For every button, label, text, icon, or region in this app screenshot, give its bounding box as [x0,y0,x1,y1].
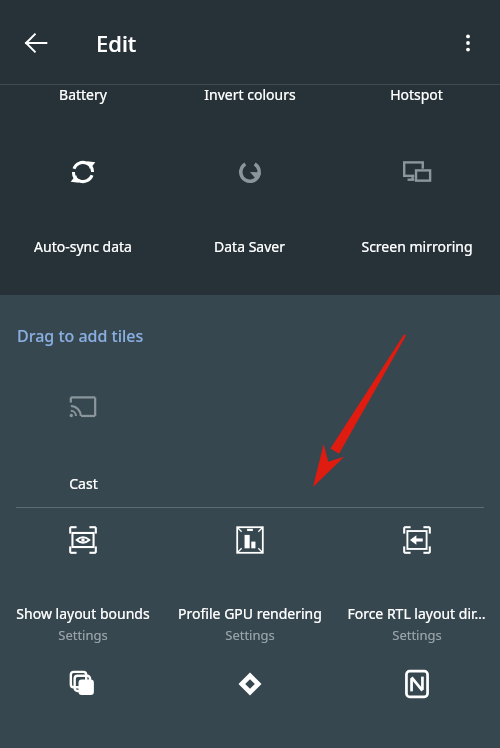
button[interactable]: Cast [0,375,166,507]
button[interactable]: Show layout bounds [0,508,166,658]
staticText: Drag to add tiles [17,325,144,347]
button[interactable]: NFC [333,658,500,748]
button[interactable]: Force RTL layout dir… [333,508,500,658]
staticText: Cast [69,474,98,493]
staticText: Battery [59,85,107,104]
staticText: Edit [96,28,137,58]
staticText: Settings [225,626,275,644]
button[interactable]: More options [444,19,492,67]
staticText: Settings [392,626,442,644]
button[interactable]: Hotspot [333,85,500,130]
button[interactable]: Back [12,19,60,67]
button[interactable]: Invert colours [166,85,333,130]
staticText: Force RTL layout dir… [347,604,486,623]
button[interactable]: Data Saver [166,140,333,270]
button[interactable]: Battery [0,85,166,130]
staticText: Screen mirroring [361,237,473,256]
button[interactable]: Auto-sync data [0,140,166,270]
staticText: Data Saver [214,237,285,256]
button[interactable]: Screen mirroring [333,140,500,270]
staticText: Auto-sync data [34,237,132,256]
staticText: Settings [58,626,108,644]
button[interactable]: Profile GPU rendering [166,508,333,658]
staticText: Hotspot [390,85,443,104]
staticText: Profile GPU rendering [178,604,322,623]
button[interactable]: Window animations [0,658,166,748]
staticText: Show layout bounds [16,604,150,623]
button[interactable]: Sensors off [166,658,333,748]
staticText: Invert colours [204,85,296,104]
